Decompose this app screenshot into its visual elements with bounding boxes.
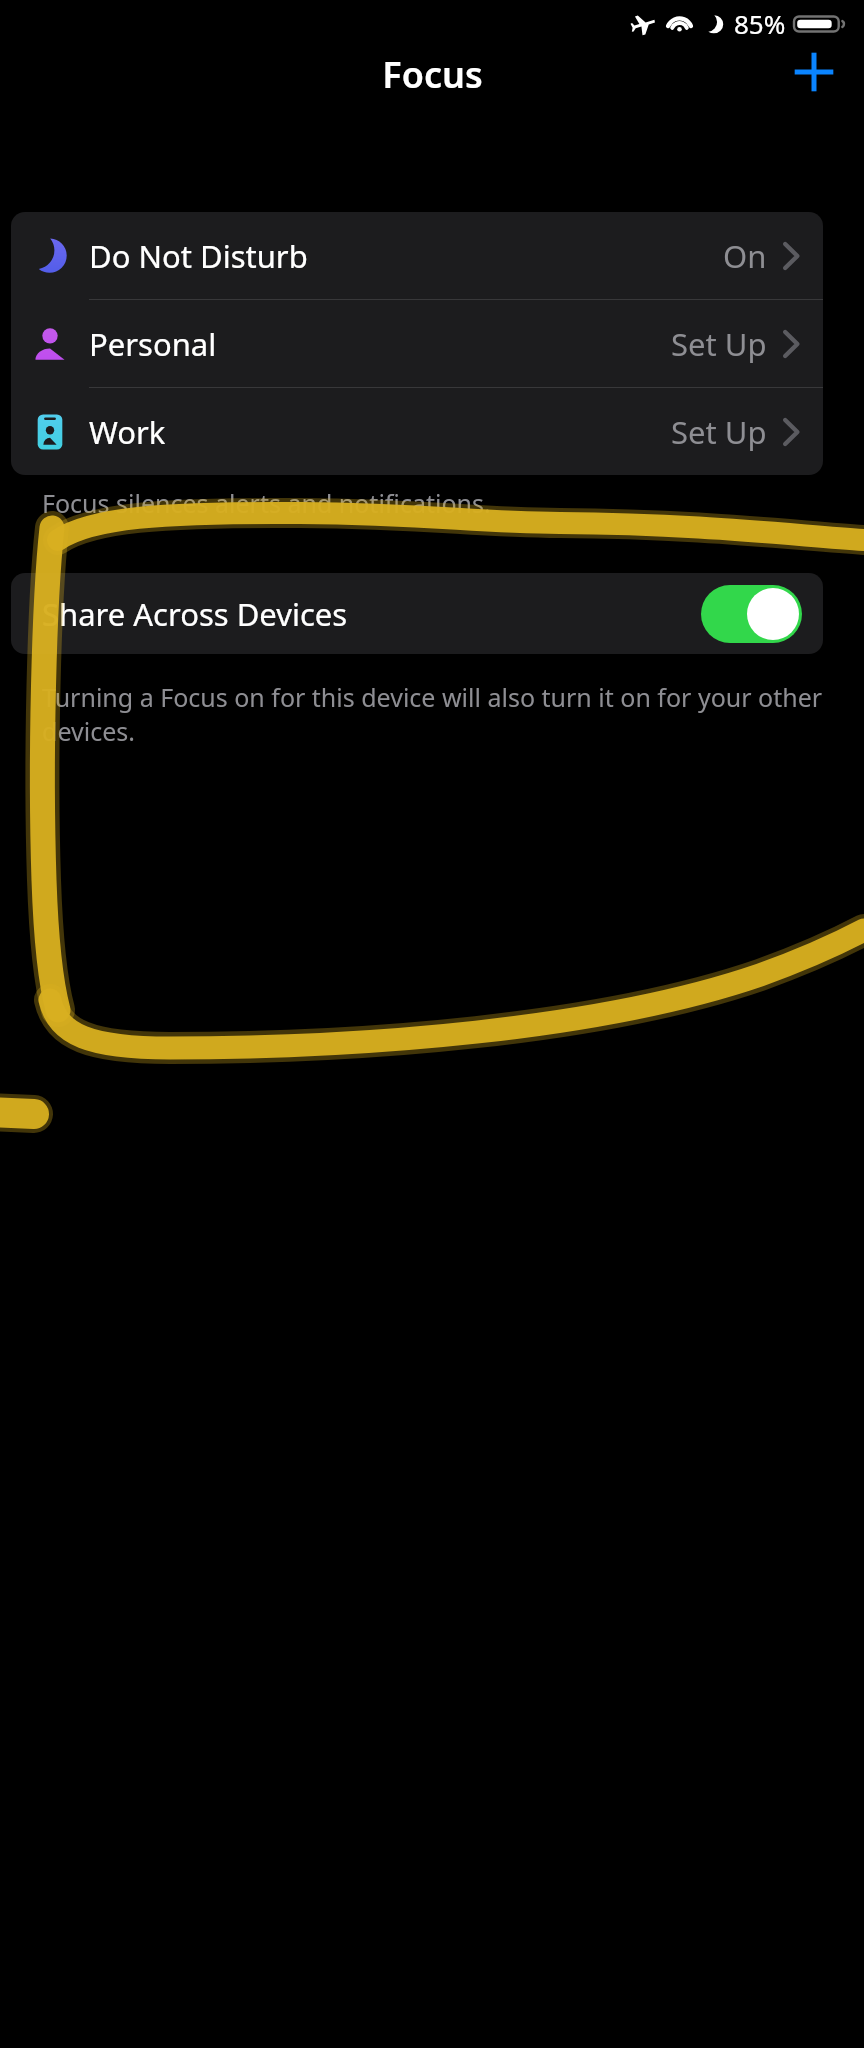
staticText: Work [89, 411, 166, 453]
staticText: Turning a Focus on for this device will … [42, 680, 828, 748]
button[interactable]: Work [11, 388, 823, 475]
staticText: 85% [734, 6, 786, 41]
staticText: Focus [382, 50, 483, 99]
button[interactable]: Personal [11, 300, 823, 388]
staticText: Share Across Devices [42, 593, 348, 635]
staticText: Focus silences alerts and notifications. [42, 486, 491, 520]
staticText: On [723, 235, 767, 277]
button[interactable]: Add Focus [778, 36, 850, 108]
staticText: Do Not Disturb [89, 235, 308, 277]
staticText: Personal [89, 323, 217, 365]
staticText: Set Up [671, 323, 767, 365]
button[interactable]: Do Not Disturb [11, 212, 823, 300]
staticText: Set Up [671, 411, 767, 453]
button[interactable]: Share Across Devices [11, 573, 823, 654]
button[interactable]: Share Across Devices toggle [701, 585, 802, 643]
